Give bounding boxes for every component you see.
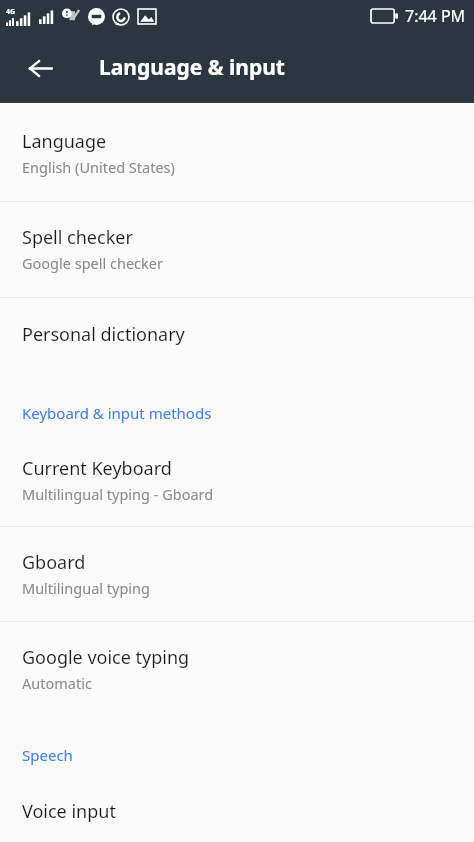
- button[interactable]: Gboard: [0, 527, 474, 621]
- staticText: Automatic: [22, 673, 92, 693]
- button[interactable]: Spell checker: [0, 202, 474, 297]
- staticText: Personal dictionary: [22, 322, 185, 347]
- staticText: Language & input: [99, 53, 285, 82]
- button[interactable]: Voice input: [0, 781, 474, 842]
- button[interactable]: Language: [0, 103, 474, 201]
- staticText: Multilingual typing - Gboard: [22, 484, 214, 504]
- button[interactable]: Back: [14, 42, 66, 94]
- staticText: Google voice typing: [22, 645, 190, 670]
- staticText: Speech: [22, 745, 73, 765]
- staticText: Language: [22, 129, 107, 154]
- staticText: Gboard: [22, 550, 86, 575]
- staticText: Current Keyboard: [22, 456, 172, 481]
- staticText: 4G: [6, 7, 16, 17]
- staticText: Google spell checker: [22, 253, 163, 273]
- staticText: Voice input: [22, 799, 116, 822]
- staticText: Keyboard & input methods: [22, 403, 212, 423]
- staticText: 7:44 PM: [405, 5, 466, 27]
- button[interactable]: Current Keyboard: [0, 439, 474, 526]
- staticText: Multilingual typing: [22, 578, 150, 598]
- staticText: English (United States): [22, 157, 175, 177]
- staticText: Spell checker: [22, 225, 133, 250]
- button[interactable]: Google voice typing: [0, 622, 474, 715]
- button[interactable]: Personal dictionary: [0, 298, 474, 373]
